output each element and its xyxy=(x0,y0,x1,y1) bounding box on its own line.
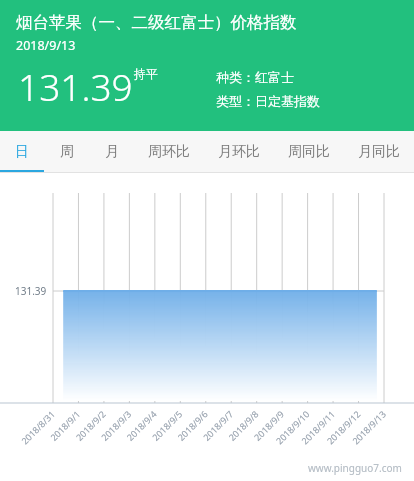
staticText: 种类：红富士 xyxy=(216,69,294,85)
button[interactable]: 周 xyxy=(44,131,89,173)
staticText: 月同比 xyxy=(358,143,400,161)
button[interactable]: 月同比 xyxy=(344,131,414,173)
button[interactable]: 周同比 xyxy=(274,131,344,173)
staticText: 周同比 xyxy=(288,143,330,161)
staticText: 月环比 xyxy=(218,143,260,161)
staticText: 类型：日定基指数 xyxy=(216,93,320,109)
staticText: 月 xyxy=(105,143,119,161)
staticText: 周环比 xyxy=(148,143,190,161)
button[interactable]: 月环比 xyxy=(204,131,274,173)
staticText: 131.39 xyxy=(18,61,133,111)
staticText: 2018/9/13 xyxy=(16,37,76,54)
staticText: 周 xyxy=(60,143,74,161)
staticText: 持平 xyxy=(134,66,158,81)
staticText: 日 xyxy=(15,143,29,161)
button[interactable]: 月 xyxy=(89,131,134,173)
button[interactable]: 周环比 xyxy=(134,131,204,173)
button[interactable]: 日 xyxy=(0,131,44,173)
staticText: 烟台苹果（一、二级红富士）价格指数 xyxy=(16,12,297,33)
